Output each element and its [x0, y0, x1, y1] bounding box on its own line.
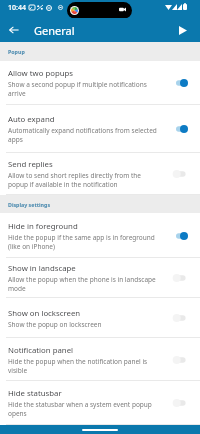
button[interactable]: Play	[173, 20, 193, 40]
staticText: Automatically expand notifications from …	[8, 126, 157, 144]
staticText: Hide the popup when the notification pan…	[8, 357, 157, 375]
button[interactable]: Show in landscape	[0, 258, 200, 298]
staticText: Allow the popup when the phone is in lan…	[8, 275, 157, 293]
button[interactable]: Back	[4, 20, 24, 40]
button[interactable]: Auto expand	[0, 105, 200, 153]
staticText: Allow to send short replies directly fro…	[8, 171, 157, 189]
staticText: Show on lockscreen	[8, 308, 81, 319]
staticText: Hide the popup if the same app is in for…	[8, 233, 157, 251]
button[interactable]: Notification panel	[0, 338, 200, 381]
staticText: Hide the statusbar when a system event p…	[8, 400, 157, 418]
staticText: Notification panel	[8, 345, 74, 356]
button[interactable]: Allow two popups	[0, 61, 200, 105]
staticText: Hide in foreground	[8, 221, 78, 232]
staticText: Show the popup on lockscreen	[8, 320, 102, 329]
staticText: Show a second popup if multiple notifica…	[8, 80, 157, 98]
staticText: General	[34, 23, 75, 38]
staticText: Hide statusbar	[8, 388, 62, 399]
staticText: Popup	[8, 48, 25, 55]
staticText: 10:44	[8, 3, 26, 13]
staticText: Display settings	[8, 201, 51, 208]
staticText: Send replies	[8, 159, 53, 170]
button[interactable]: Hide in foreground	[0, 213, 200, 258]
button[interactable]: Send replies	[0, 153, 200, 195]
staticText: Allow two popups	[8, 68, 74, 79]
staticText: Show in landscape	[8, 263, 76, 274]
staticText: Auto expand	[8, 114, 55, 125]
button[interactable]: Hide statusbar	[0, 381, 200, 425]
button[interactable]: Show on lockscreen	[0, 298, 200, 338]
